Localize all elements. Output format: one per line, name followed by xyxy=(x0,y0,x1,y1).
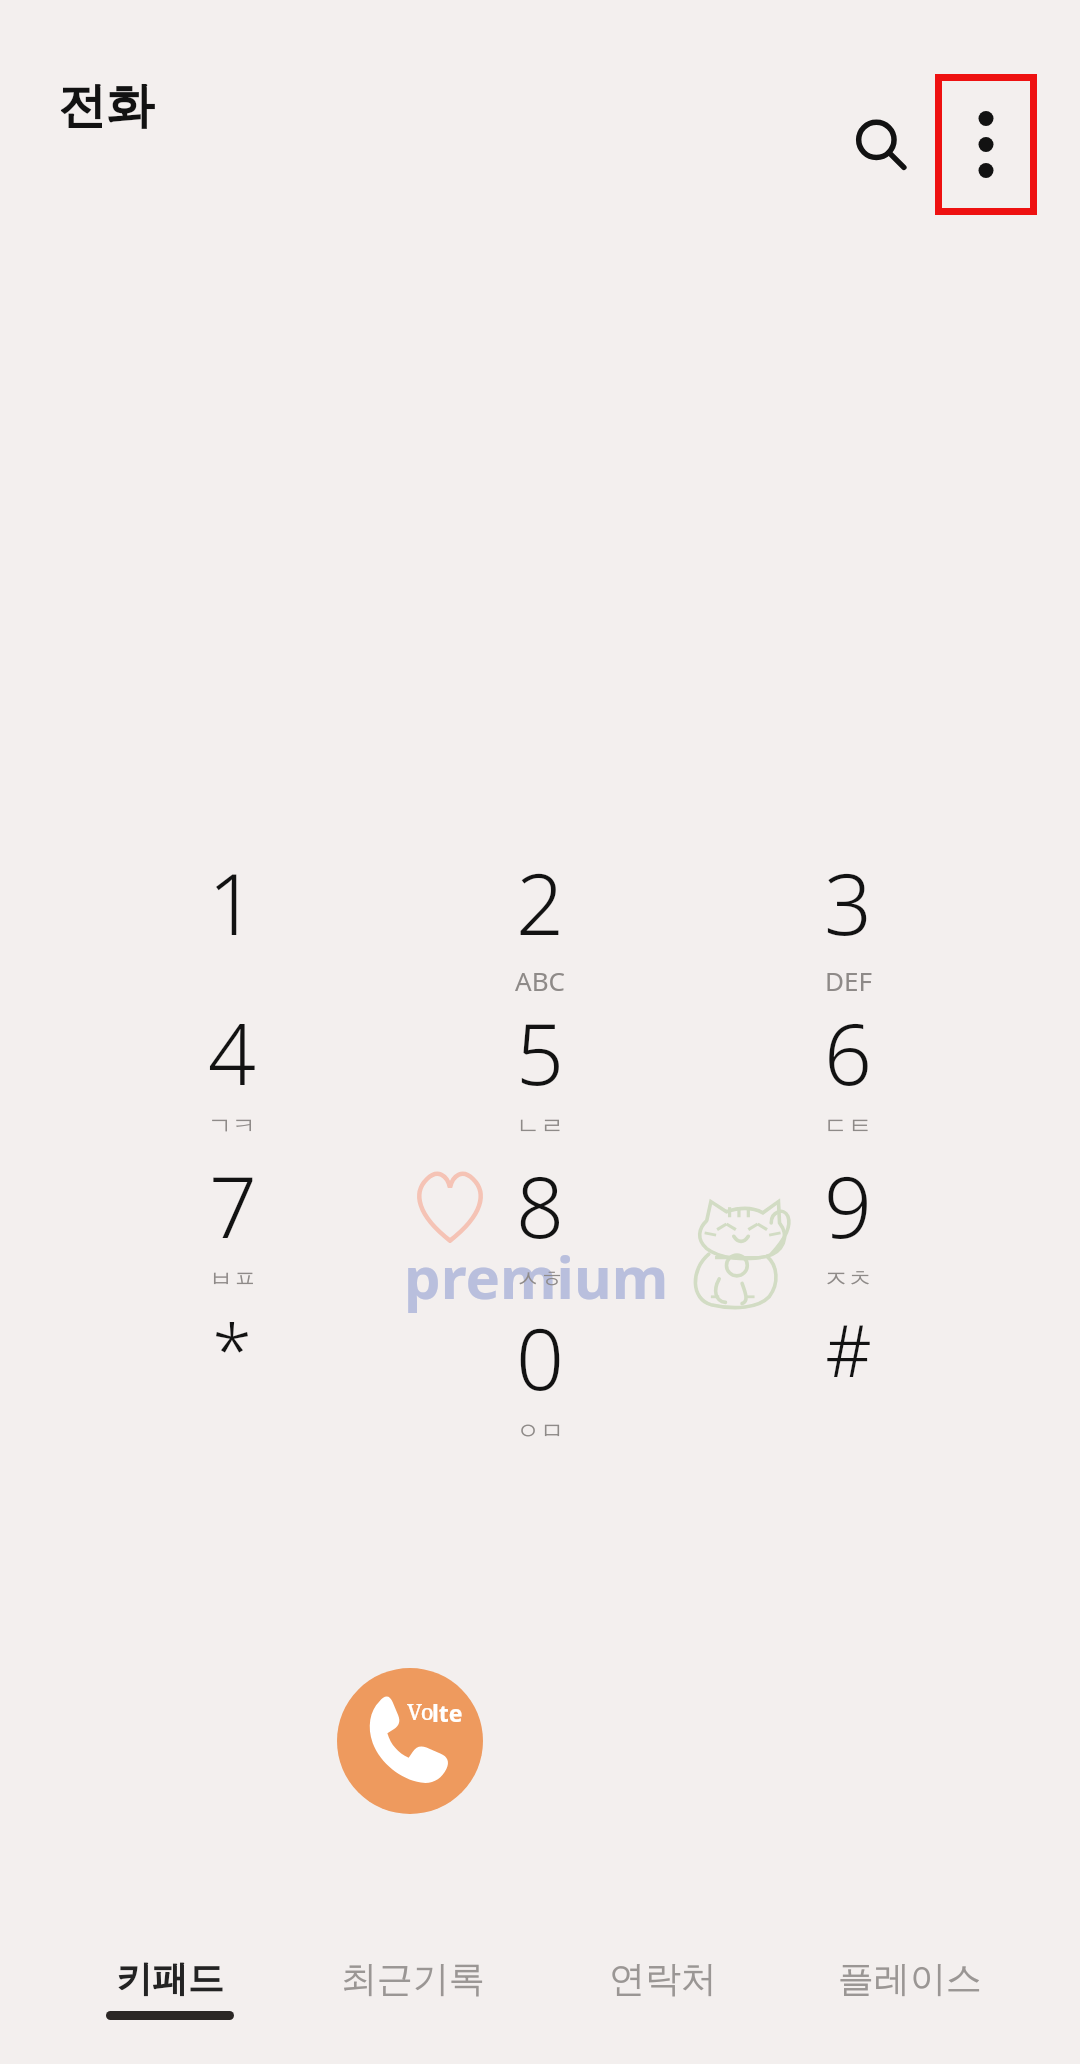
staticText: 2 xyxy=(516,845,564,959)
staticText: lte xyxy=(432,1697,463,1728)
staticText: 7 xyxy=(209,1148,257,1262)
button[interactable]: 1 xyxy=(107,845,357,995)
staticText: 연락처 xyxy=(609,1956,717,2001)
staticText: 9 xyxy=(824,1148,872,1262)
button[interactable]: 6 xyxy=(723,995,973,1145)
button[interactable]: 연락처 xyxy=(548,1930,778,2064)
staticText: ㄷㅌ xyxy=(824,1111,872,1141)
button[interactable]: 5 xyxy=(415,995,665,1145)
button[interactable]: 2 xyxy=(415,845,665,995)
staticText: DEF xyxy=(825,963,872,995)
button[interactable]: More options xyxy=(935,74,1037,215)
staticText: premium xyxy=(404,1237,669,1316)
staticText: 1 xyxy=(208,845,256,959)
staticText: ㅈㅊ xyxy=(824,1264,872,1294)
staticText: ㄱㅋ xyxy=(208,1111,256,1141)
staticText: TUV xyxy=(515,1295,565,1298)
button[interactable]: * xyxy=(107,1300,357,1450)
button[interactable]: 3 xyxy=(723,845,973,995)
button[interactable]: Call xyxy=(337,1668,483,1814)
button[interactable]: 9 xyxy=(723,1148,973,1298)
staticText: 최근기록 xyxy=(341,1956,485,2001)
button[interactable]: 7 xyxy=(107,1148,357,1298)
button[interactable]: 최근기록 xyxy=(298,1930,528,2064)
button[interactable]: # xyxy=(723,1300,973,1450)
staticText: 4 xyxy=(208,995,256,1109)
button[interactable]: 키패드 xyxy=(55,1930,285,2064)
staticText: ㅅㅎ xyxy=(516,1264,564,1294)
staticText: 8 xyxy=(516,1148,564,1262)
staticText: ABC xyxy=(515,963,565,995)
button[interactable]: 0 xyxy=(415,1300,665,1450)
staticText: 플레이스 xyxy=(838,1956,982,2001)
button[interactable]: 8 xyxy=(415,1148,665,1298)
staticText: 전화 xyxy=(58,76,154,136)
staticText: 3 xyxy=(824,845,872,959)
staticText: ㄴㄹ xyxy=(516,1111,564,1141)
button[interactable]: Search xyxy=(828,74,932,214)
staticText: Vo xyxy=(407,1696,434,1726)
button[interactable]: 4 xyxy=(107,995,357,1145)
staticText: # xyxy=(825,1300,872,1398)
staticText: ㅂㅍ xyxy=(209,1264,257,1294)
staticText: ㅇㅁ xyxy=(516,1416,564,1446)
staticText: 5 xyxy=(516,995,564,1109)
staticText: * xyxy=(212,1300,252,1398)
staticText: 키패드 xyxy=(116,1956,224,2001)
button[interactable]: 플레이스 xyxy=(795,1930,1025,2064)
staticText: 0 xyxy=(516,1300,564,1414)
staticText: 6 xyxy=(824,995,872,1109)
